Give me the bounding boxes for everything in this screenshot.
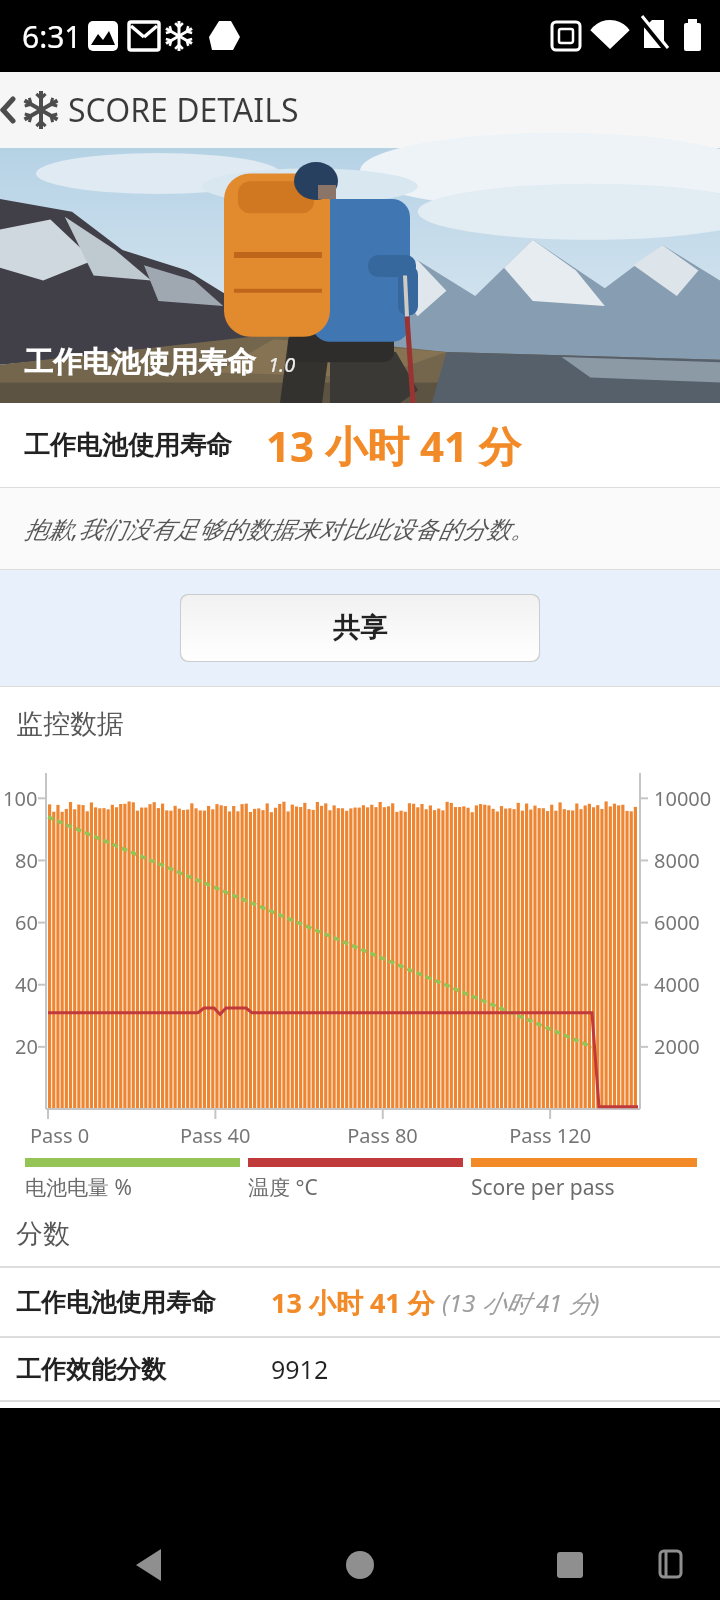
staticText: 工作效能分数	[16, 1354, 271, 1385]
button[interactable]	[0, 1408, 240, 1600]
button[interactable]	[240, 1408, 480, 1600]
staticText: 13 小时 41 分	[266, 417, 521, 474]
button[interactable]: 工作电池使用寿命	[0, 1268, 720, 1336]
staticText: 1.0	[268, 351, 296, 378]
staticText: 6:31	[22, 16, 82, 57]
staticText: 分数	[16, 1217, 70, 1251]
staticText: 监控数据	[16, 707, 124, 741]
staticText: 温度 °C	[248, 1173, 318, 1202]
staticText: Score per pass	[471, 1173, 615, 1202]
button[interactable]: 工作效能分数	[0, 1338, 720, 1400]
staticText: 工作电池使用寿命	[16, 1287, 271, 1318]
staticText: 电池电量 %	[25, 1173, 132, 1202]
button[interactable]: 共享	[181, 595, 539, 661]
staticText: 抱歉,我们没有足够的数据来对比此设备的分数。	[24, 512, 535, 545]
staticText: 工作电池使用寿命	[24, 429, 232, 462]
staticText: 共享	[333, 611, 387, 645]
button[interactable]: SCORE DETAILS	[0, 72, 720, 148]
staticText: SCORE DETAILS	[68, 88, 299, 132]
staticText: 9912	[271, 1352, 329, 1386]
button[interactable]	[480, 1408, 720, 1600]
staticText: 工作电池使用寿命	[24, 344, 256, 381]
staticText: 13 小时 41 分	[271, 1284, 442, 1321]
staticText: (13 小时 41 分)	[442, 1286, 600, 1319]
